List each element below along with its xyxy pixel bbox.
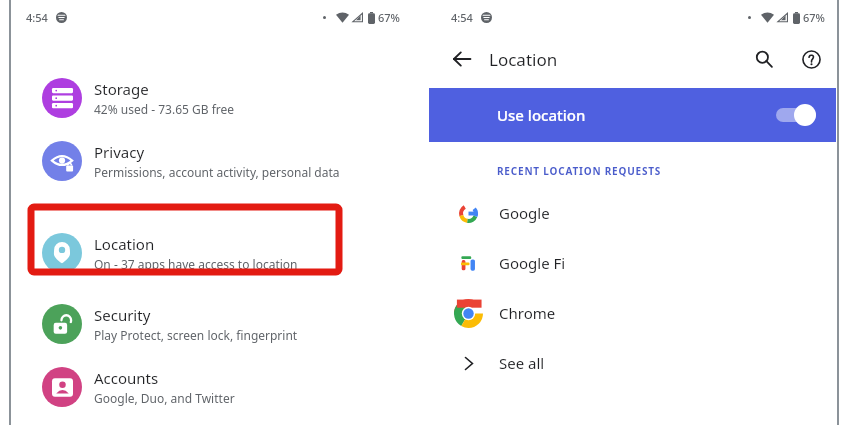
button[interactable]: Back: [445, 42, 479, 76]
button[interactable]: See all: [425, 343, 850, 383]
staticText: Google Fi: [499, 253, 566, 273]
staticText: RECENT LOCATION REQUESTS: [497, 164, 662, 178]
staticText: Accounts: [94, 368, 159, 388]
button[interactable]: Location: [0, 229, 425, 277]
staticText: Security: [94, 305, 151, 325]
button[interactable]: Google Fi: [425, 244, 850, 282]
button[interactable]: Search: [747, 42, 781, 76]
staticText: Storage: [94, 79, 149, 99]
staticText: Play Protect, screen lock, fingerprint: [94, 327, 298, 343]
staticText: 42% used - 73.65 GB free: [94, 101, 235, 117]
button[interactable]: Chrome: [425, 294, 850, 332]
staticText: On - 37 apps have access to location: [94, 256, 298, 272]
staticText: 4:54: [451, 10, 473, 25]
button[interactable]: Use location: [429, 88, 836, 142]
staticText: 67%: [803, 10, 825, 25]
staticText: Use location: [497, 105, 586, 125]
button[interactable]: Security: [0, 300, 425, 348]
staticText: See all: [499, 353, 545, 373]
button[interactable]: Privacy: [0, 137, 425, 185]
staticText: 67%: [378, 10, 400, 25]
staticText: Location: [94, 234, 155, 254]
button[interactable]: Help: [794, 42, 828, 76]
button[interactable]: Storage: [0, 74, 425, 122]
staticText: Google, Duo, and Twitter: [94, 390, 235, 406]
staticText: Chrome: [499, 303, 556, 323]
staticText: Location: [489, 48, 558, 71]
button[interactable]: Accounts: [0, 363, 425, 411]
staticText: Google: [499, 203, 550, 223]
button[interactable]: Google: [425, 194, 850, 232]
staticText: Privacy: [94, 142, 145, 162]
staticText: Permissions, account activity, personal …: [94, 164, 340, 180]
staticText: 4:54: [26, 10, 48, 25]
